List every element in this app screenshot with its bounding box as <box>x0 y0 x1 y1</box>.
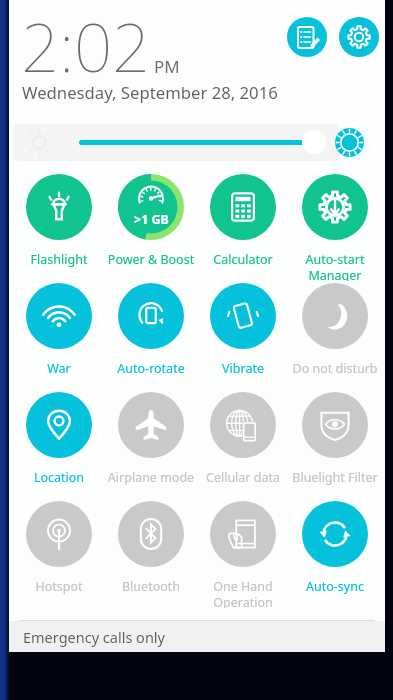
staticText: Emergency calls only <box>23 627 165 647</box>
staticText: War <box>13 360 105 377</box>
button[interactable]: Cellular data <box>197 390 289 499</box>
button[interactable]: Airplane mode <box>105 390 197 499</box>
button[interactable]: Brightness <box>13 124 339 161</box>
staticText: Auto-start Manager <box>289 251 381 281</box>
button[interactable]: >1 GB <box>105 172 197 281</box>
staticText: Flashlight <box>13 251 105 268</box>
staticText: Power & Boost <box>105 251 197 268</box>
button[interactable]: War <box>13 281 105 390</box>
button[interactable]: Auto-rotate <box>105 281 197 390</box>
button[interactable]: Hotspot <box>13 499 105 608</box>
staticText: Calculator <box>197 251 289 268</box>
staticText: Cellular data <box>197 469 289 486</box>
staticText: PM <box>154 55 180 78</box>
staticText: 2:02 <box>21 0 151 91</box>
button[interactable]: Bluelight Filter <box>289 390 381 499</box>
button[interactable]: Vibrate <box>197 281 289 390</box>
staticText: Hotspot <box>13 578 105 595</box>
staticText: Auto-rotate <box>105 360 197 377</box>
button[interactable]: Auto brightness <box>335 128 364 157</box>
button[interactable]: Location <box>13 390 105 499</box>
staticText: >1 GB <box>134 211 169 228</box>
staticText: Wednesday, September 28, 2016 <box>22 81 278 104</box>
button[interactable]: Flashlight <box>13 172 105 281</box>
staticText: Airplane mode <box>105 469 197 486</box>
button[interactable]: Auto-sync <box>289 499 381 608</box>
button[interactable]: Bluetooth <box>105 499 197 608</box>
staticText: Bluelight Filter <box>289 469 381 486</box>
staticText: One Hand Operation <box>197 578 289 608</box>
button[interactable]: Settings <box>339 17 379 57</box>
button[interactable]: Do not disturb <box>289 281 381 390</box>
staticText: Bluetooth <box>105 578 197 595</box>
staticText: Vibrate <box>197 360 289 377</box>
staticText: Location <box>13 469 105 486</box>
staticText: Auto-sync <box>289 578 381 595</box>
button[interactable]: Notes <box>287 17 327 57</box>
button[interactable]: One Hand Operation <box>197 499 289 608</box>
staticText: Do not disturb <box>289 360 381 377</box>
button[interactable]: Auto-start Manager <box>289 172 381 281</box>
button[interactable]: Calculator <box>197 172 289 281</box>
